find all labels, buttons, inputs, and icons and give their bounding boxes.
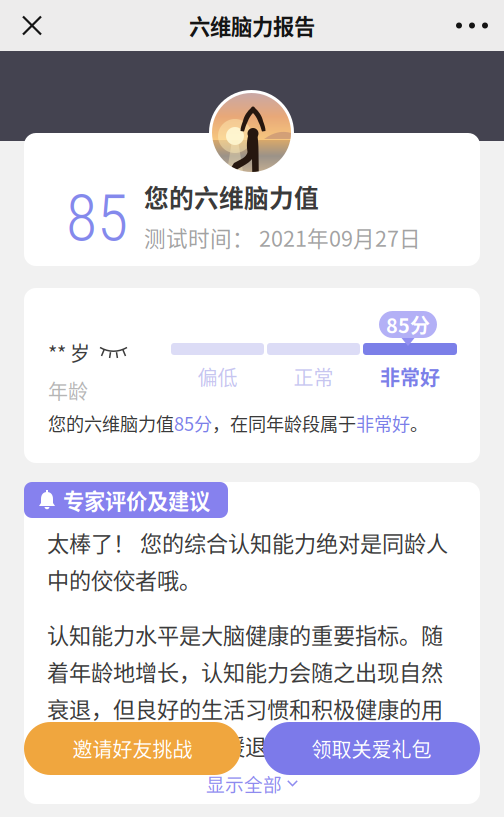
- staticText: 您的六维脑力值: [48, 410, 174, 436]
- button[interactable]: 关闭: [0, 0, 64, 51]
- staticText: ，在同年龄段属于: [212, 410, 356, 436]
- staticText: 六维脑力报告: [189, 10, 315, 41]
- staticText: 邀请好友挑战: [72, 734, 192, 763]
- staticText: 正常: [293, 362, 333, 391]
- staticText: ** 岁: [48, 338, 90, 367]
- staticText: 偏低: [197, 362, 237, 391]
- button[interactable]: 更多: [440, 0, 504, 51]
- staticText: 85分: [174, 410, 212, 436]
- staticText: 测试时间： 2021年09月27日: [144, 222, 421, 253]
- button[interactable]: 显示全部: [198, 765, 306, 802]
- button[interactable]: 领取关爱礼包: [263, 722, 480, 775]
- staticText: 显示全部: [206, 770, 282, 797]
- staticText: 非常好: [380, 362, 440, 391]
- staticText: 。: [410, 410, 428, 436]
- staticText: 85: [66, 181, 128, 256]
- button[interactable]: 邀请好友挑战: [24, 722, 241, 775]
- staticText: 85分: [386, 310, 430, 339]
- staticText: 认知能力水平是大脑健康的重要指标。随着年龄地增长，认知能力会随之出现自然衰退，但…: [47, 618, 443, 761]
- staticText: 专家评价及建议: [63, 485, 210, 515]
- staticText: 非常好: [356, 410, 410, 436]
- staticText: 您的六维脑力值: [144, 179, 319, 215]
- staticText: 年龄: [48, 376, 88, 405]
- staticText: 太棒了！ 您的综合认知能力绝对是同龄人中的佼佼者哦。: [47, 526, 448, 595]
- staticText: 领取关爱礼包: [311, 734, 431, 763]
